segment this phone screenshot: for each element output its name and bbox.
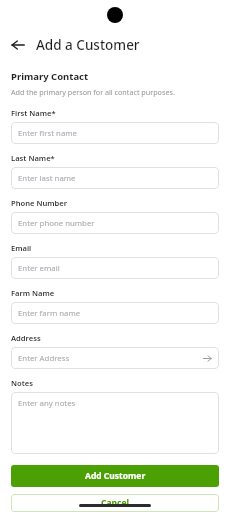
button[interactable]: Enter phone number (11, 212, 219, 234)
button[interactable]: Enter first name (11, 122, 219, 144)
staticText: Enter any notes (18, 398, 76, 409)
button[interactable]: Enter Address (11, 347, 219, 369)
staticText: Email (11, 243, 32, 253)
button[interactable]: Back (8, 35, 28, 55)
staticText: Phone Number (11, 198, 68, 208)
staticText: Enter phone number (18, 218, 95, 229)
button[interactable]: Enter any notes (11, 392, 219, 454)
staticText: Cancel (101, 497, 130, 509)
staticText: Enter farm name (18, 308, 81, 319)
staticText: Address (11, 333, 41, 343)
staticText: Farm Name (11, 288, 55, 298)
button[interactable]: Enter last name (11, 167, 219, 189)
staticText: Last Name* (11, 153, 55, 163)
button[interactable]: Cancel (11, 494, 219, 512)
staticText: Add Customer (85, 470, 146, 482)
staticText: Enter Address (18, 353, 70, 364)
button[interactable]: Add Customer (11, 465, 219, 487)
staticText: Primary Contact (11, 70, 89, 83)
staticText: Add a Customer (36, 36, 140, 54)
staticText: Notes (11, 378, 33, 388)
staticText: Enter first name (18, 128, 77, 139)
button[interactable]: Enter farm name (11, 302, 219, 324)
staticText: Enter email (18, 263, 60, 274)
staticText: First Name* (11, 108, 56, 118)
staticText: Add the primary person for all contact p… (11, 87, 175, 97)
button[interactable]: Enter email (11, 257, 219, 279)
staticText: Enter last name (18, 173, 76, 184)
